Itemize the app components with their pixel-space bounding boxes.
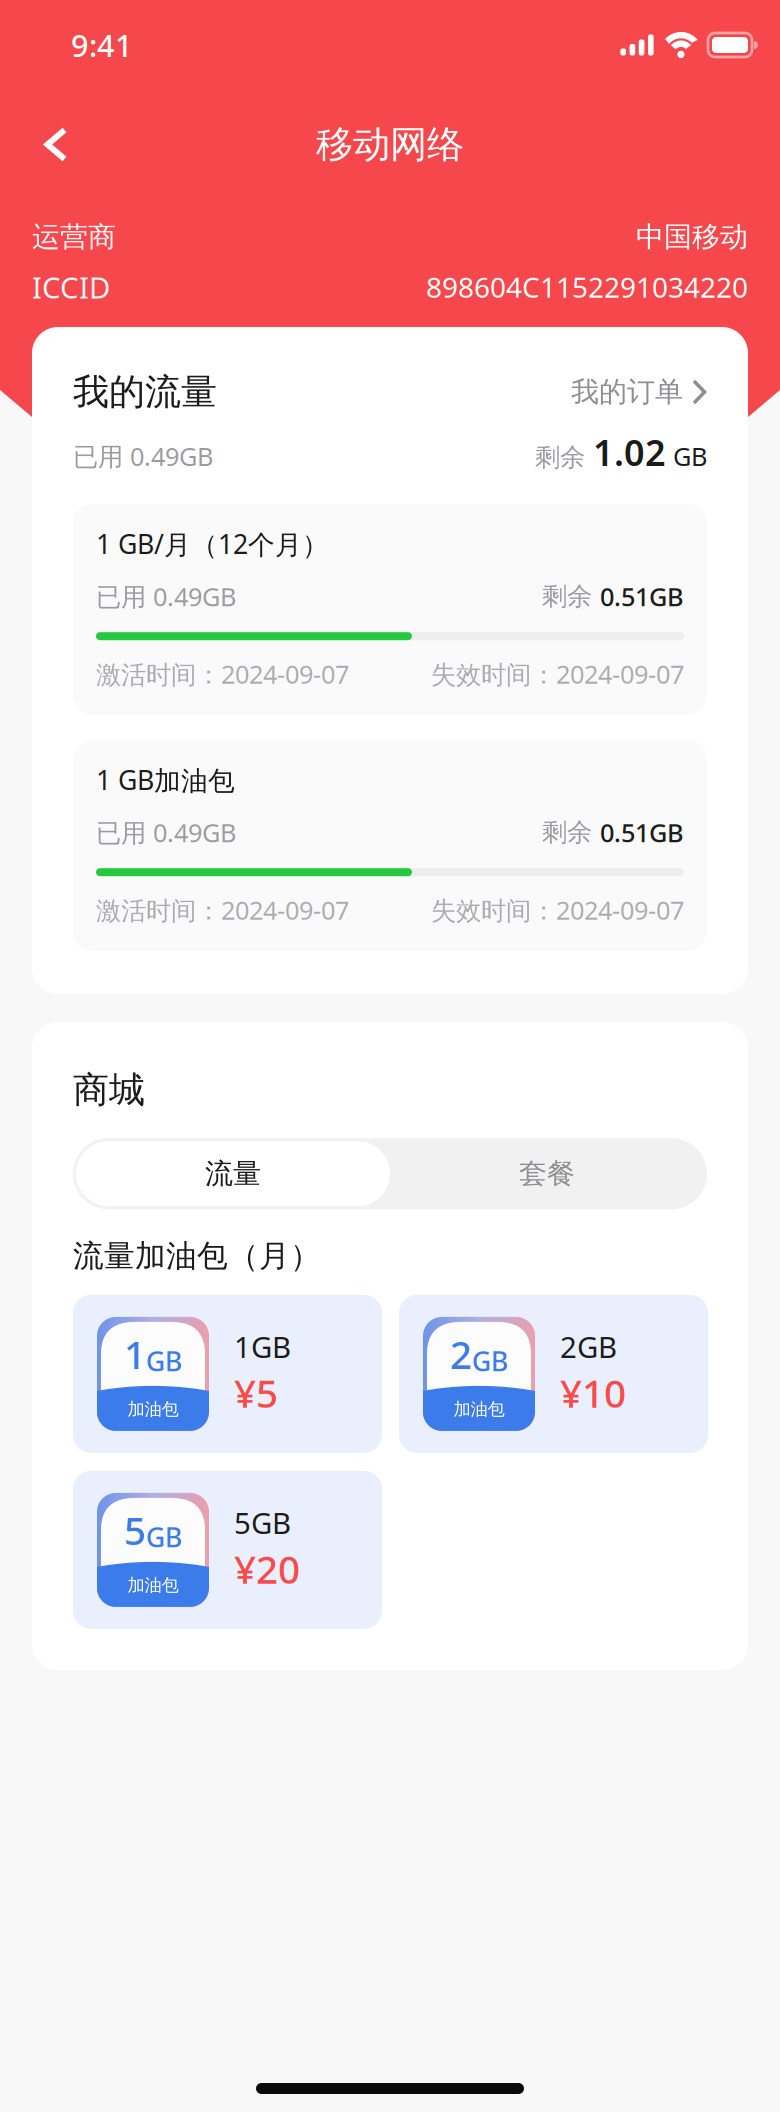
staticText: ¥5 [234,1367,278,1418]
staticText: ¥20 [234,1543,300,1594]
staticText: 剩余 [542,817,600,848]
staticText: 9:41 [71,25,133,65]
staticText: 5GB [234,1503,291,1542]
button[interactable]: 1 [73,1295,382,1453]
button[interactable]: 5 [73,1471,382,1629]
staticText: 加油包 [453,1399,504,1420]
staticText: 流量加油包（月） [73,1237,321,1275]
staticText: GB [146,1343,182,1378]
staticText: 套餐 [519,1156,575,1191]
staticText: 1 GB加油包 [96,762,235,798]
staticText: 激活时间：2024-09-07 [96,893,349,927]
staticText: 加油包 [127,1399,178,1420]
staticText: 我的流量 [73,370,217,414]
staticText: 1 [124,1328,146,1379]
staticText: 运营商 [32,220,116,254]
staticText: ICCID [32,267,110,306]
staticText: 剩余 [542,581,600,612]
button[interactable]: 我的订单 [571,375,707,409]
staticText: 已用 0.49GB [96,580,236,613]
staticText: 移动网络 [316,122,464,167]
staticText: 1 GB/月（12个月） [96,526,329,562]
staticText: 0.51GB [600,816,684,849]
staticText: ¥10 [560,1367,626,1418]
staticText: 1.02 [593,428,666,476]
button[interactable]: Back [0,111,92,178]
staticText: 已用 0.49GB [96,816,236,849]
staticText: 898604C1152291034220 [426,268,748,306]
staticText: 0.51GB [600,580,684,613]
staticText: GB [666,439,707,473]
staticText: 加油包 [127,1575,178,1596]
staticText: 已用 0.49GB [73,439,213,473]
staticText: 激活时间：2024-09-07 [96,657,349,691]
staticText: GB [472,1343,508,1378]
staticText: 中国移动 [636,220,748,254]
staticText: 1GB [234,1327,291,1366]
staticText: 2GB [560,1327,617,1366]
staticText: 5 [124,1504,146,1555]
staticText: 流量 [205,1156,261,1191]
button[interactable]: 套餐 [390,1141,704,1206]
staticText: 2 [450,1328,472,1379]
staticText: 剩余 [535,442,593,473]
staticText: 失效时间：2024-09-07 [431,657,684,691]
staticText: 商城 [73,1068,145,1112]
staticText: 失效时间：2024-09-07 [431,893,684,927]
button[interactable]: 2 [399,1295,708,1453]
staticText: 我的订单 [571,375,683,409]
staticText: GB [146,1519,182,1554]
button[interactable]: 流量 [76,1141,390,1206]
